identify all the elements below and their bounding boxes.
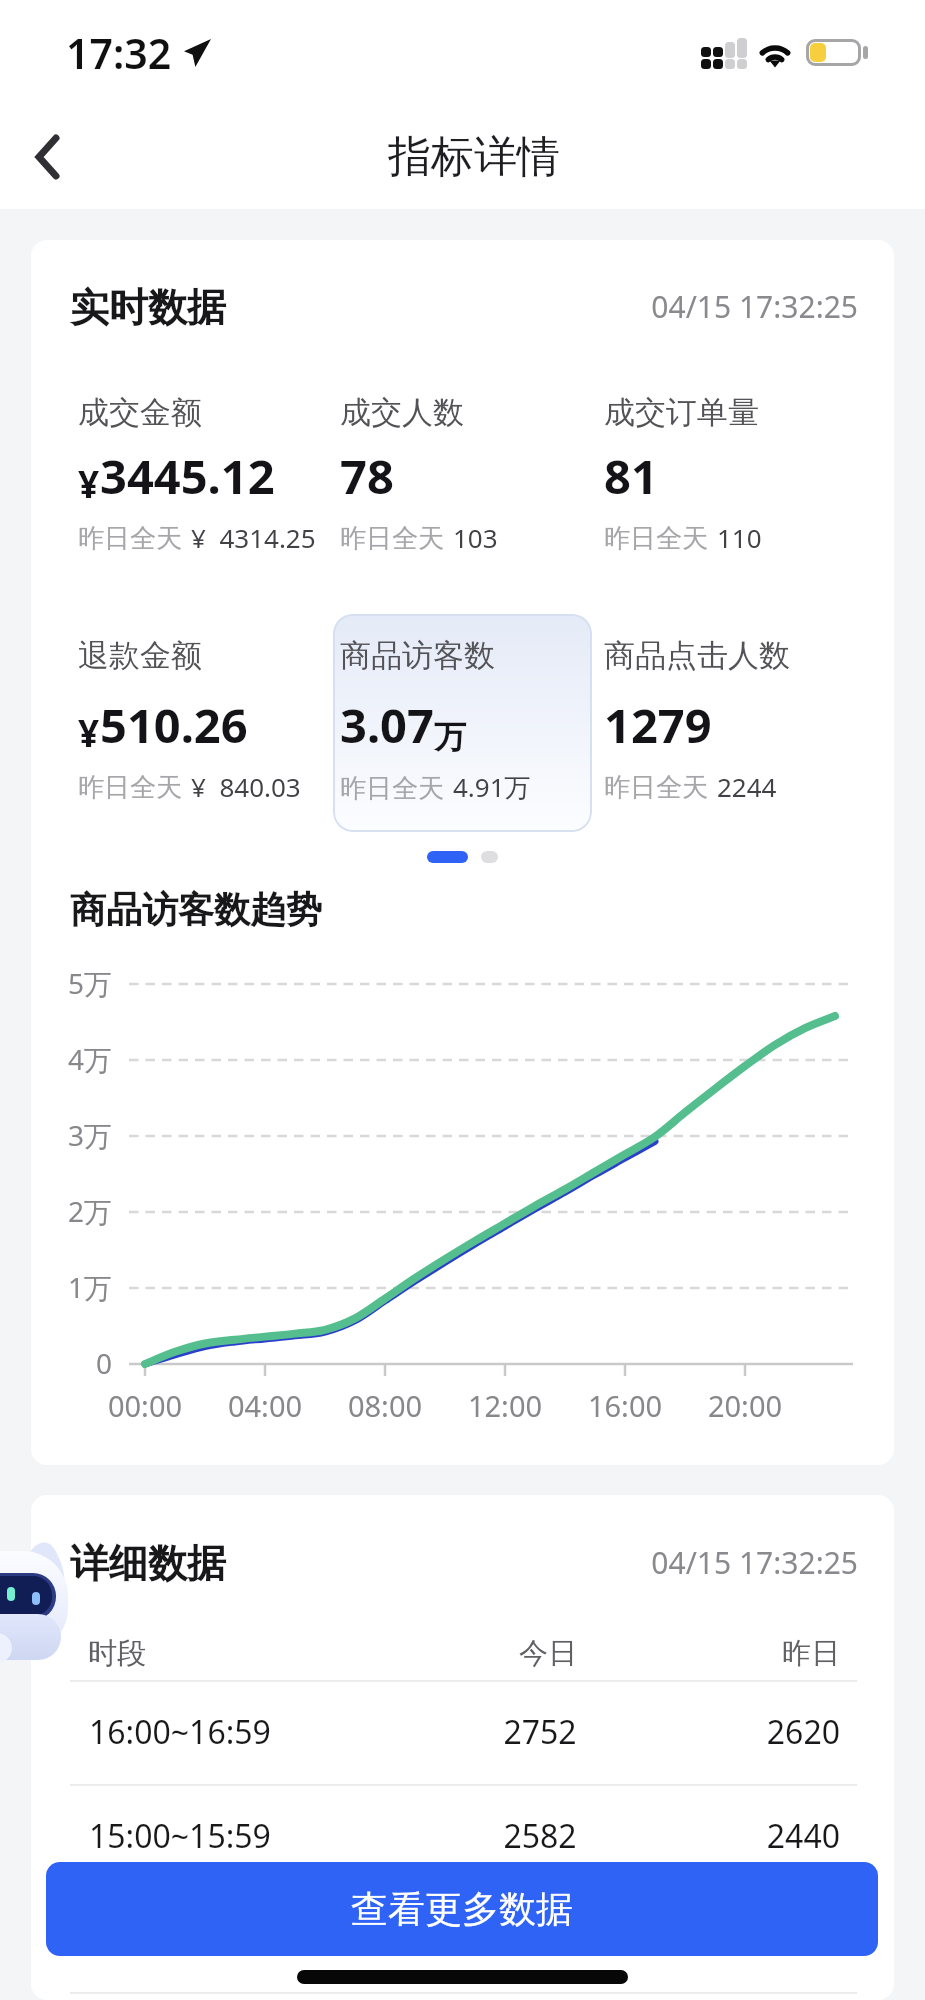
staticText: 查看更多数据: [351, 1886, 573, 1933]
staticText: 商品点击人数: [604, 636, 790, 675]
staticText: 81: [604, 444, 658, 508]
button[interactable]: [333, 614, 592, 832]
staticText: ¥: [78, 458, 100, 508]
staticText: 110: [717, 520, 762, 555]
button[interactable]: 退款金额: [69, 611, 328, 829]
staticText: 实时数据: [70, 283, 226, 332]
staticText: 时段: [88, 1635, 146, 1672]
button[interactable]: 商品点击人数: [597, 611, 856, 829]
staticText: 详细数据: [70, 1539, 226, 1588]
staticText: 昨日全天: [78, 771, 182, 804]
staticText: 昨日全天: [604, 771, 708, 804]
staticText: ¥ 4314.25: [191, 520, 316, 555]
button[interactable]: 16:00~16:59: [31, 1680, 894, 1784]
staticText: 3万: [41, 1116, 112, 1154]
button[interactable]: 15:00~15:59: [31, 1784, 894, 1888]
staticText: 3.07: [340, 693, 434, 757]
staticText: 4万: [41, 1040, 112, 1078]
staticText: 17:32: [66, 25, 172, 81]
button[interactable]: 查看更多数据: [46, 1862, 878, 1956]
staticText: 16:00~16:59: [89, 1710, 271, 1754]
staticText: 成交订单量: [604, 393, 759, 432]
staticText: 14:00~14:59: [89, 1918, 271, 1962]
staticText: 昨日: [680, 1635, 840, 1672]
staticText: 20:00: [685, 1386, 805, 1425]
button[interactable]: Back: [12, 122, 82, 192]
staticText: 今日: [468, 1635, 628, 1672]
staticText: 08:00: [325, 1386, 445, 1425]
staticText: 78: [340, 444, 394, 508]
staticText: 5万: [41, 964, 112, 1002]
staticText: 04/15 17:32:25: [651, 1542, 858, 1583]
staticText: 04/15 17:32:25: [651, 286, 858, 327]
staticText: 15:00~15:59: [89, 1814, 271, 1858]
staticText: 3445.12: [100, 444, 275, 508]
staticText: 1万: [41, 1268, 112, 1306]
staticText: 0: [41, 1344, 112, 1382]
button[interactable]: Page 2: [481, 851, 498, 863]
staticText: ¥ 840.03: [191, 769, 301, 804]
staticText: 商品访客数趋势: [70, 887, 322, 932]
staticText: 00:00: [85, 1386, 205, 1425]
staticText: 退款金额: [78, 636, 202, 675]
staticText: 1279: [604, 693, 712, 757]
staticText: 昨日全天: [78, 522, 182, 555]
staticText: 昨日全天: [340, 522, 444, 555]
staticText: 2244: [717, 769, 777, 804]
staticText: 2440: [680, 1814, 840, 1858]
staticText: 2752: [460, 1710, 620, 1754]
staticText: 2582: [460, 1814, 620, 1858]
staticText: 4.91万: [453, 769, 531, 805]
staticText: 510.26: [100, 693, 248, 757]
staticText: 昨日全天: [604, 522, 708, 555]
staticText: 万: [434, 717, 466, 757]
staticText: 16:00: [565, 1386, 685, 1425]
staticText: 2620: [680, 1710, 840, 1754]
staticText: ¥: [78, 707, 100, 757]
staticText: 昨日全天: [340, 772, 444, 805]
staticText: 2310: [680, 1918, 840, 1962]
staticText: 2488: [460, 1918, 620, 1962]
staticText: 商品访客数: [340, 636, 495, 675]
staticText: 04:00: [205, 1386, 325, 1425]
button[interactable]: Page 1: [427, 851, 468, 863]
staticText: 成交金额: [78, 393, 202, 432]
staticText: 12:00: [445, 1386, 565, 1425]
button[interactable]: 成交订单量: [597, 368, 856, 586]
staticText: 指标详情: [388, 130, 560, 184]
button[interactable]: 成交金额: [69, 368, 328, 586]
staticText: 成交人数: [340, 393, 464, 432]
staticText: 2万: [41, 1192, 112, 1230]
button[interactable]: 14:00~14:59: [31, 1888, 894, 1992]
button[interactable]: 商品访客数: [333, 611, 592, 829]
button[interactable]: 成交人数: [333, 368, 592, 586]
staticText: 103: [453, 520, 498, 555]
